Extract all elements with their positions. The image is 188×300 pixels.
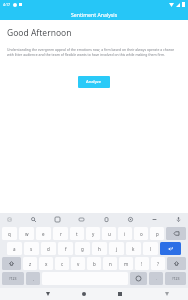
- staticText: r: [60, 231, 62, 237]
- button[interactable]: Enter: [160, 242, 181, 255]
- button[interactable]: b: [87, 257, 101, 270]
- staticText: ?: [157, 261, 159, 267]
- button[interactable]: m: [119, 257, 133, 270]
- staticText: Sentiment Analysis: [71, 11, 118, 18]
- button[interactable]: r: [53, 227, 68, 240]
- staticText: o: [140, 231, 143, 237]
- button[interactable]: Back: [43, 289, 53, 299]
- button[interactable]: q: [2, 227, 17, 240]
- staticText: !: [141, 261, 143, 267]
- staticText: w: [25, 231, 29, 237]
- button[interactable]: z: [23, 257, 37, 270]
- staticText: a: [13, 246, 16, 252]
- button[interactable]: h: [92, 242, 107, 255]
- button[interactable]: y: [86, 227, 100, 240]
- button[interactable]: p: [150, 227, 164, 240]
- staticText: i: [124, 231, 126, 237]
- staticText: d: [47, 246, 50, 252]
- button[interactable]: Emoji: [130, 272, 147, 285]
- button[interactable]: ?123: [2, 272, 24, 285]
- button[interactable]: Clipboard: [102, 215, 111, 224]
- staticText: q: [8, 231, 11, 237]
- button[interactable]: l: [143, 242, 158, 255]
- button[interactable]: Voice input: [174, 215, 183, 224]
- button[interactable]: k: [126, 242, 141, 255]
- staticText: Understanding the evergreen appeal of th…: [7, 47, 181, 57]
- button[interactable]: g: [75, 242, 90, 255]
- staticText: n: [109, 261, 112, 267]
- button[interactable]: Backspace: [166, 227, 186, 240]
- button[interactable]: Home: [79, 289, 89, 299]
- button[interactable]: w: [19, 227, 34, 240]
- button[interactable]: c: [55, 257, 69, 270]
- button[interactable]: j: [109, 242, 124, 255]
- staticText: e: [42, 231, 45, 237]
- button[interactable]: ?: [151, 257, 165, 270]
- button[interactable]: x: [39, 257, 53, 270]
- button[interactable]: o: [134, 227, 148, 240]
- staticText: 4:17: [3, 2, 11, 7]
- button[interactable]: v: [71, 257, 85, 270]
- staticText: Analyze: [86, 79, 102, 85]
- staticText: j: [116, 246, 118, 252]
- button[interactable]: More options: [150, 215, 159, 224]
- button[interactable]: Analyze: [78, 76, 110, 88]
- button[interactable]: t: [70, 227, 84, 240]
- staticText: p: [156, 231, 159, 237]
- staticText: u: [108, 231, 111, 237]
- staticText: Good Afternoon: [7, 27, 72, 39]
- button[interactable]: i: [118, 227, 132, 240]
- staticText: k: [132, 246, 135, 252]
- staticText: x: [45, 261, 48, 267]
- staticText: f: [65, 246, 67, 252]
- staticText: ,: [33, 276, 34, 281]
- button[interactable]: Search: [29, 215, 38, 224]
- staticText: m: [124, 261, 129, 267]
- staticText: z: [29, 261, 32, 267]
- button[interactable]: n: [103, 257, 117, 270]
- button[interactable]: !: [135, 257, 149, 270]
- button[interactable]: Expand toolbar: [5, 215, 14, 224]
- staticText: b: [93, 261, 96, 267]
- button[interactable]: GIF: [77, 215, 86, 224]
- staticText: v: [77, 261, 80, 267]
- staticText: g: [81, 246, 84, 252]
- button[interactable]: Settings: [126, 215, 135, 224]
- staticText: l: [150, 246, 152, 252]
- button[interactable]: Shift: [2, 257, 21, 270]
- button[interactable]: Recent apps: [115, 289, 125, 299]
- staticText: c: [61, 261, 64, 267]
- button[interactable]: ?123: [165, 272, 186, 285]
- staticText: ?123: [172, 276, 180, 281]
- button[interactable]: d: [41, 242, 56, 255]
- staticText: s: [30, 246, 33, 252]
- staticText: t: [76, 231, 78, 237]
- button[interactable]: s: [24, 242, 39, 255]
- button[interactable]: e: [36, 227, 51, 240]
- button[interactable]: Hide keyboard: [162, 289, 172, 299]
- staticText: h: [98, 246, 101, 252]
- button[interactable]: f: [58, 242, 73, 255]
- button[interactable]: u: [102, 227, 116, 240]
- button[interactable]: a: [7, 242, 22, 255]
- staticText: ?123: [9, 276, 17, 281]
- staticText: y: [92, 231, 95, 237]
- staticText: .: [156, 276, 157, 281]
- button[interactable]: ,: [26, 272, 40, 285]
- button[interactable]: Shift: [167, 257, 186, 270]
- button[interactable]: Stickers: [53, 215, 62, 224]
